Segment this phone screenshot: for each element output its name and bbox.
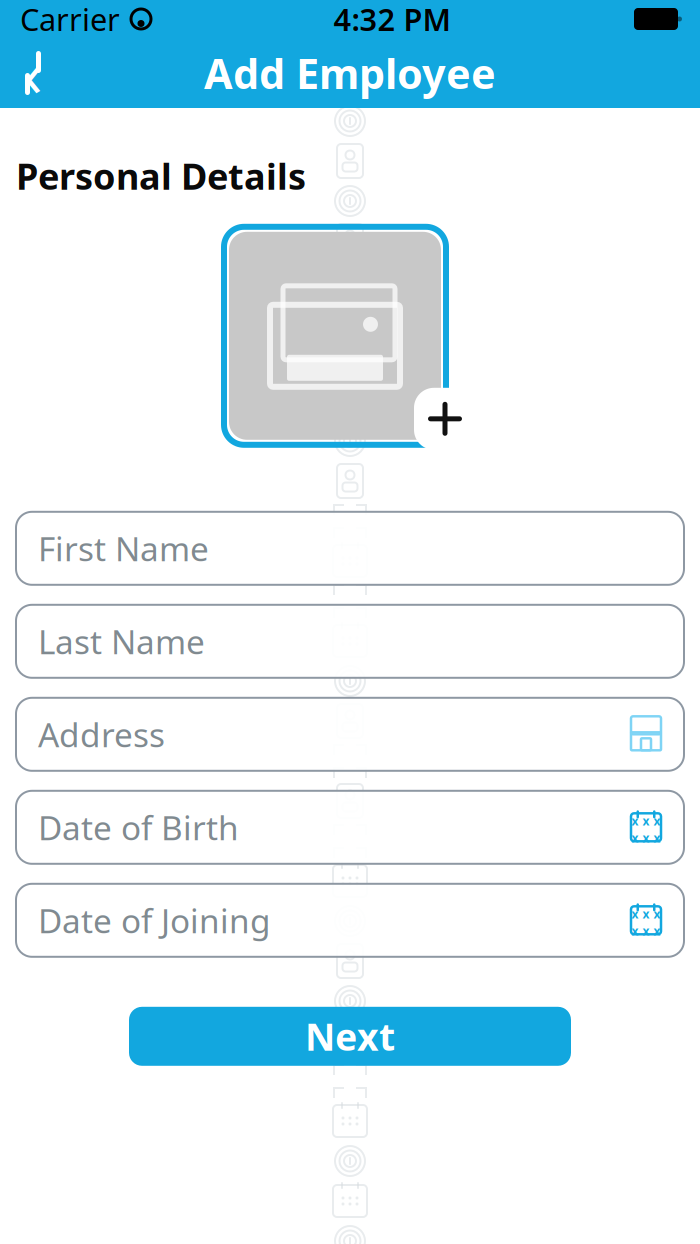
- staticText: x: [631, 923, 638, 939]
- staticText: First Name: [38, 526, 209, 570]
- staticText: x: [653, 830, 660, 846]
- staticText: ‹: [23, 32, 42, 114]
- staticText: x: [642, 830, 649, 846]
- button[interactable]: Date of Birth: [16, 791, 684, 864]
- staticText: Address: [38, 712, 165, 756]
- staticText: x: [631, 813, 638, 829]
- button[interactable]: Back: [0, 40, 66, 106]
- staticText: x: [642, 906, 649, 922]
- staticText: Last Name: [38, 619, 205, 663]
- staticText: x: [653, 923, 660, 939]
- staticText: x: [653, 813, 660, 829]
- staticText: Next: [305, 1011, 395, 1061]
- staticText: Date of Birth: [38, 805, 239, 849]
- button[interactable]: Last Name: [16, 605, 684, 678]
- button[interactable]: Add photo: [414, 388, 476, 450]
- button[interactable]: Address: [16, 698, 684, 771]
- staticText: Personal Details: [16, 152, 306, 200]
- staticText: x: [642, 813, 649, 829]
- staticText: Carrier: [20, 0, 120, 39]
- staticText: Add Employee: [204, 46, 496, 100]
- staticText: x: [653, 906, 660, 922]
- button[interactable]: Date of Joining: [16, 884, 684, 957]
- staticText: 4:32 PM: [333, 0, 450, 39]
- staticText: Date of Joining: [38, 898, 271, 942]
- staticText: x: [642, 923, 649, 939]
- staticText: x: [631, 830, 638, 846]
- button[interactable]: Next: [129, 1007, 571, 1066]
- button[interactable]: First Name: [16, 512, 684, 585]
- staticText: x: [631, 906, 638, 922]
